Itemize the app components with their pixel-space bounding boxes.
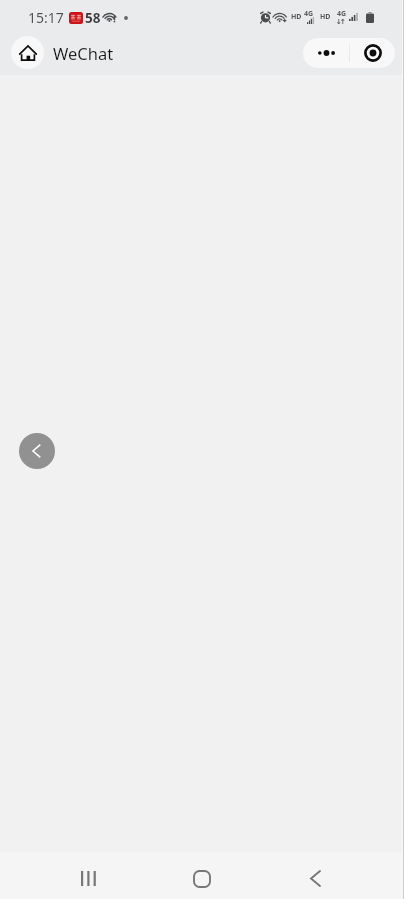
button[interactable]: More options (303, 38, 349, 68)
staticText: 15:17 (28, 8, 64, 27)
button[interactable]: Home (11, 36, 44, 69)
staticText: HD (320, 12, 331, 22)
staticText: 4G (304, 9, 314, 19)
staticText: 4G (337, 9, 347, 19)
button[interactable]: Home (174, 852, 230, 899)
staticText: 58 (85, 9, 101, 27)
button[interactable]: Close mini program (350, 38, 395, 68)
button[interactable]: Back (19, 433, 55, 469)
button[interactable]: Back (287, 852, 343, 899)
button[interactable]: Recent apps (60, 852, 116, 899)
staticText: HD (291, 12, 302, 22)
staticText: WeChat (53, 42, 114, 64)
